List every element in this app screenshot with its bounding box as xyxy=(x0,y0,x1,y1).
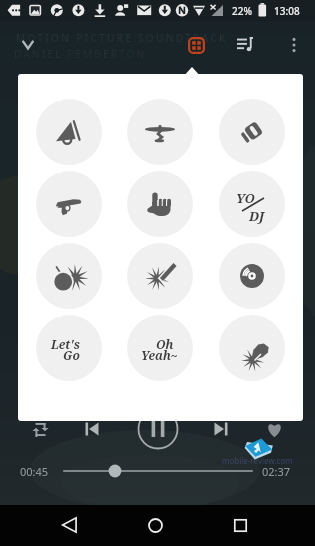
staticText: Let's xyxy=(51,336,80,352)
button[interactable]: Repeat xyxy=(22,411,58,447)
button[interactable]: Let's Go xyxy=(36,315,102,381)
button[interactable]: Yo DJ xyxy=(219,171,285,237)
staticText: 22% xyxy=(232,4,252,18)
staticText: 13:08 xyxy=(274,4,300,18)
staticText: Yeah~ xyxy=(141,347,178,363)
button[interactable]: Home xyxy=(135,505,175,545)
button[interactable]: Oh Yeah xyxy=(127,315,193,381)
staticText: 00:45 xyxy=(20,464,49,479)
button[interactable]: Favourite xyxy=(256,411,292,447)
staticText: Oh xyxy=(156,336,174,352)
staticText: DJ xyxy=(249,207,265,225)
staticText: YO xyxy=(236,189,255,207)
button[interactable]: Clap xyxy=(219,99,285,165)
button[interactable]: Gun shot xyxy=(36,171,102,237)
button[interactable]: Back xyxy=(50,505,90,545)
button[interactable]: Pause xyxy=(136,407,180,451)
button[interactable]: More options xyxy=(277,28,311,62)
button[interactable]: Air horn xyxy=(36,99,102,165)
button[interactable]: Previous track xyxy=(74,411,110,447)
staticText: Go xyxy=(63,347,80,363)
staticText: 02:37 xyxy=(262,464,291,479)
staticText: mobile-review.com xyxy=(222,455,293,466)
button[interactable]: Cymbal xyxy=(127,99,193,165)
button[interactable]: Play queue xyxy=(226,26,264,64)
staticText: MOTION PICTURE SOUNDTRACK xyxy=(16,31,228,45)
button[interactable]: Bomb xyxy=(36,243,102,309)
button[interactable]: Collapse xyxy=(9,26,47,64)
button[interactable]: Next track xyxy=(203,411,239,447)
button[interactable]: Punch xyxy=(219,315,285,381)
button[interactable]: Magic xyxy=(127,243,193,309)
staticText: DANIEL PEMBERTON xyxy=(14,47,147,61)
button[interactable]: Grid view xyxy=(177,26,215,64)
button[interactable]: Record scratch xyxy=(219,243,285,309)
button[interactable]: Finger snap xyxy=(127,171,193,237)
button[interactable]: Recent apps xyxy=(220,505,260,545)
